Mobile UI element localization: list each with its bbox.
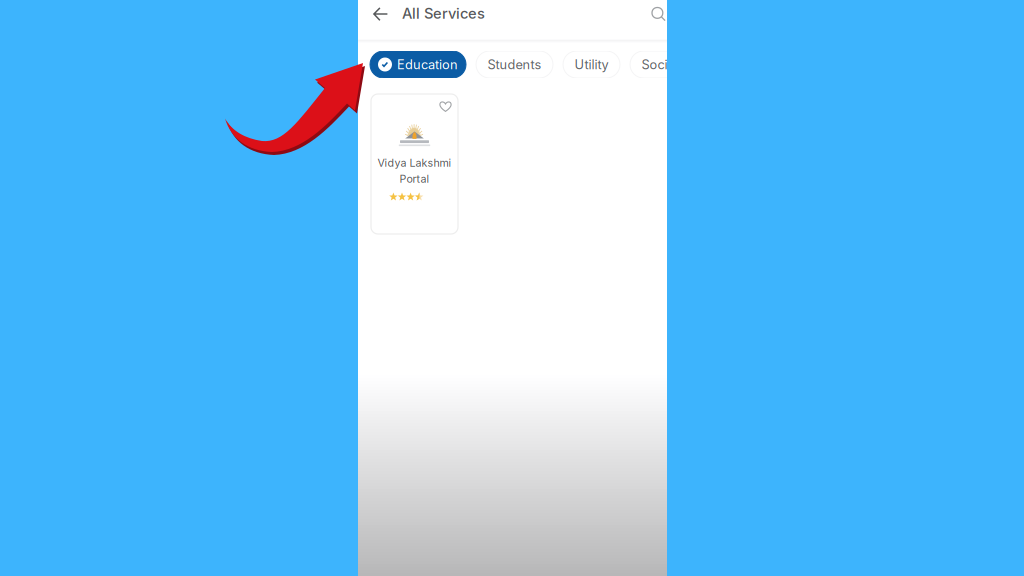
staticText: Portal — [399, 172, 429, 185]
button[interactable]: Utility — [563, 51, 620, 78]
button[interactable]: Add to favourites — [439, 100, 452, 112]
button[interactable]: Back — [373, 1, 388, 27]
button[interactable]: Search — [651, 0, 666, 27]
staticText: Students — [487, 57, 541, 72]
button[interactable]: Vidya Lakshmi — [371, 94, 458, 234]
staticText: Social — [641, 57, 677, 72]
staticText: Utility — [574, 57, 608, 72]
button[interactable]: Social — [630, 51, 689, 78]
staticText: Education — [397, 57, 458, 72]
button[interactable]: Education — [370, 51, 466, 78]
staticText: All Services — [402, 5, 485, 22]
staticText: Vidya Lakshmi — [377, 156, 451, 169]
button[interactable]: Students — [476, 51, 553, 78]
